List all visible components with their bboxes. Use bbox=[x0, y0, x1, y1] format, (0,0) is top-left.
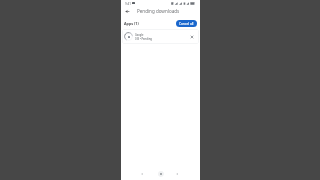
button[interactable]: Cancel all bbox=[176, 20, 197, 27]
button[interactable]: Navigate up bbox=[123, 7, 131, 15]
button[interactable]: Google bbox=[122, 29, 199, 44]
staticText: Apps (1) bbox=[124, 21, 139, 26]
button[interactable]: Home bbox=[157, 170, 164, 177]
button[interactable]: Recent apps bbox=[173, 170, 180, 177]
button[interactable]: Back bbox=[138, 170, 145, 177]
button[interactable]: Cancel download bbox=[189, 34, 195, 40]
staticText: Pending downloads bbox=[137, 8, 180, 14]
staticText: Google bbox=[135, 33, 144, 36]
staticText: 0 B • Pending bbox=[135, 37, 153, 41]
staticText: Cancel all bbox=[179, 22, 194, 26]
staticText: 9:41 bbox=[125, 2, 131, 6]
